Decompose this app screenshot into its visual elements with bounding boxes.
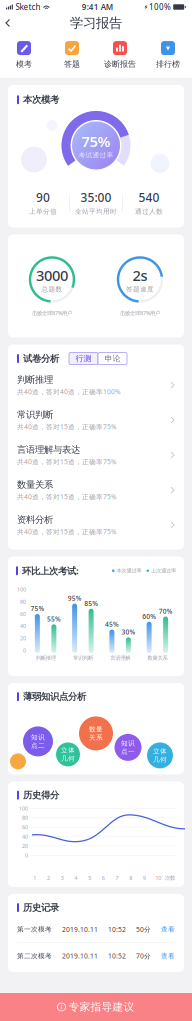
staticText: 行测	[75, 354, 91, 363]
staticText: 共40道，答对15道，正确率75%	[17, 422, 117, 431]
staticText: 30%	[121, 627, 135, 636]
staticText: 击败全球87%用户	[32, 309, 72, 317]
button[interactable]: 判断推理	[17, 367, 175, 402]
staticText: 6	[102, 874, 105, 881]
staticText: 共40道，答对15道，正确率75%	[17, 457, 117, 466]
staticText: 答题速度	[126, 285, 154, 293]
staticText: 540	[138, 189, 159, 205]
staticText: 诊断报告	[104, 59, 136, 69]
staticText: 历史得分	[23, 789, 59, 801]
staticText: 5	[88, 874, 91, 881]
staticText: 20	[20, 635, 26, 642]
staticText: 85%	[84, 599, 98, 608]
staticText: 言语理解	[110, 655, 130, 661]
staticText: 2019.10.11	[62, 951, 98, 960]
staticText: 10:52	[108, 951, 126, 960]
staticText: 学习报告	[70, 15, 122, 31]
staticText: 60	[20, 610, 26, 617]
button[interactable]: 查看	[161, 952, 175, 960]
button[interactable]: 排行榜	[144, 35, 192, 75]
staticText: 历史记录	[23, 902, 59, 913]
staticText: 判断推理	[17, 374, 53, 385]
staticText: 45%	[105, 620, 119, 629]
staticText: 95%	[68, 594, 82, 603]
staticText: 10:52	[108, 925, 126, 934]
staticText: 60%	[142, 612, 156, 621]
staticText: 1	[33, 874, 36, 881]
staticText: 本次通过率	[116, 567, 141, 574]
staticText: 立体 几何	[61, 746, 75, 763]
staticText: 上单分值	[29, 207, 57, 215]
staticText: 4	[74, 874, 77, 881]
staticText: 立体 几何	[153, 747, 167, 764]
staticText: 数量关系	[147, 655, 167, 661]
staticText: i	[60, 1003, 62, 1011]
staticText: 查看	[161, 952, 175, 960]
button[interactable]: 言语理解与表达	[17, 437, 175, 472]
staticText: 申论	[104, 354, 120, 363]
staticText: 60	[22, 824, 28, 831]
staticText: 专家指导建议	[68, 1000, 134, 1013]
button[interactable]: 行测	[69, 352, 98, 364]
staticText: 9:41 AM	[82, 2, 113, 12]
staticText: 上次通过率	[151, 567, 176, 574]
staticText: 80	[20, 598, 26, 605]
staticText: 10	[155, 874, 161, 881]
staticText: 0	[25, 852, 28, 859]
staticText: 100%	[149, 2, 171, 12]
button[interactable]: 答题	[48, 35, 96, 75]
button[interactable]: i	[0, 993, 192, 1021]
staticText: 薄弱知识点分析	[23, 691, 86, 702]
staticText: 言语理解与表达	[17, 444, 80, 455]
staticText: 共40道，答对40道，正确率100%	[17, 387, 121, 396]
staticText: 7	[115, 874, 118, 881]
staticText: 3	[61, 874, 64, 881]
staticText: 第一次模考	[17, 925, 52, 933]
staticText: 70%	[159, 607, 173, 616]
staticText: 9	[143, 874, 146, 881]
button[interactable]: 常识判断	[17, 402, 175, 437]
staticText: 查看	[161, 925, 175, 933]
staticText: 2019.10.11	[62, 925, 98, 934]
staticText: 8	[129, 874, 132, 881]
staticText: 全站平均用时	[75, 207, 117, 215]
staticText: 数量关系	[17, 479, 53, 490]
button[interactable]: Back	[0, 13, 16, 32]
staticText: 2	[47, 874, 50, 881]
staticText: 排行榜	[156, 59, 180, 69]
staticText: 2s	[132, 266, 147, 285]
button[interactable]: 申论	[98, 352, 127, 364]
staticText: 环比上次考试:	[22, 564, 79, 577]
button[interactable]: 模考	[0, 35, 48, 75]
button[interactable]: 数量关系	[17, 472, 175, 507]
staticText: 试卷分析	[23, 353, 59, 364]
staticText: 70分	[136, 951, 151, 960]
staticText: 答题	[64, 59, 80, 69]
staticText: 判断推理	[36, 655, 56, 661]
staticText: 资料分析	[17, 514, 53, 525]
staticText: 40	[20, 622, 26, 630]
staticText: 次数	[165, 875, 175, 881]
staticText: 55%	[47, 614, 61, 623]
staticText: 本次模考	[23, 94, 59, 105]
staticText: 通过人数	[135, 207, 163, 215]
staticText: 数量 关系	[89, 725, 103, 742]
staticText: 击败全球87%用户	[120, 309, 160, 317]
staticText: 常识判断	[17, 409, 53, 420]
button[interactable]: 查看	[161, 925, 175, 933]
staticText: 100	[17, 586, 26, 593]
staticText: 第二次模考	[17, 952, 52, 960]
staticText: 75%	[30, 604, 44, 613]
staticText: 常识判断	[73, 655, 93, 661]
staticText: 模考	[16, 59, 32, 69]
staticText: 3000	[36, 266, 68, 285]
staticText: 35:00	[80, 189, 111, 205]
staticText: 40	[22, 833, 28, 840]
staticText: 共40道，答对15道，正确率75%	[17, 492, 117, 501]
button[interactable]: 资料分析	[17, 507, 175, 542]
staticText: 75%	[81, 132, 110, 151]
staticText: 共40道，答对15道，正确率75%	[17, 527, 117, 536]
button[interactable]: 诊断报告	[96, 35, 144, 75]
staticText: 20	[22, 842, 28, 849]
staticText: 总题数	[41, 285, 62, 293]
